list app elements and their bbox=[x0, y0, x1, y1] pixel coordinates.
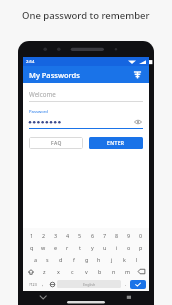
staticText: . bbox=[125, 281, 127, 287]
staticText: g bbox=[85, 256, 89, 263]
staticText: l bbox=[136, 256, 138, 263]
staticText: y bbox=[91, 244, 94, 251]
staticText: 7 bbox=[103, 232, 107, 239]
button[interactable]: n bbox=[108, 267, 119, 276]
button[interactable]: t bbox=[74, 243, 85, 252]
staticText: ?123 bbox=[29, 282, 37, 287]
button[interactable]: d bbox=[55, 255, 66, 264]
button[interactable]: English bbox=[57, 280, 121, 288]
button[interactable]: y bbox=[87, 243, 98, 252]
button[interactable]: i bbox=[111, 243, 122, 252]
button[interactable]: . bbox=[121, 279, 130, 289]
staticText: FAQ bbox=[51, 140, 62, 147]
staticText: ENTER bbox=[107, 140, 125, 147]
staticText: r bbox=[66, 244, 69, 251]
staticText: Password bbox=[29, 109, 48, 115]
button[interactable]: Show password bbox=[132, 116, 143, 127]
staticText: 4 bbox=[66, 232, 70, 239]
staticText: w bbox=[41, 244, 46, 251]
staticText: My Passwords bbox=[29, 70, 80, 80]
button[interactable]: w bbox=[38, 243, 49, 252]
staticText: x bbox=[57, 268, 60, 275]
button[interactable]: b bbox=[94, 267, 105, 276]
button[interactable]: Shift bbox=[25, 267, 36, 276]
staticText: 0 bbox=[139, 232, 143, 239]
button[interactable]: h bbox=[93, 255, 104, 264]
button[interactable]: c bbox=[67, 267, 78, 276]
button[interactable]: r bbox=[62, 243, 73, 252]
button[interactable]: Sort bbox=[131, 68, 144, 81]
staticText: 2:54 bbox=[26, 59, 35, 65]
button[interactable]: Password bbox=[29, 109, 143, 129]
staticText: English bbox=[83, 282, 96, 287]
button[interactable]: q bbox=[26, 243, 37, 252]
staticText: j bbox=[111, 256, 113, 263]
staticText: z bbox=[43, 268, 46, 275]
button[interactable]: m bbox=[122, 267, 133, 276]
staticText: a bbox=[34, 256, 38, 263]
button[interactable]: a bbox=[30, 255, 41, 264]
button[interactable]: o bbox=[123, 243, 134, 252]
staticText: 1 bbox=[30, 232, 34, 239]
staticText: , bbox=[42, 281, 44, 287]
staticText: m bbox=[125, 268, 131, 275]
staticText: b bbox=[98, 268, 102, 275]
staticText: t bbox=[79, 244, 81, 251]
button[interactable]: 0 bbox=[135, 231, 146, 240]
staticText: 9 bbox=[127, 232, 131, 239]
staticText: Welcome bbox=[29, 90, 56, 98]
button[interactable]: Done bbox=[130, 280, 146, 289]
staticText: 3 bbox=[54, 232, 58, 239]
staticText: 6 bbox=[91, 232, 95, 239]
staticText: k bbox=[123, 256, 126, 263]
button[interactable]: Welcome bbox=[29, 90, 143, 102]
button[interactable]: 1 bbox=[26, 231, 37, 240]
staticText: 2 bbox=[42, 232, 46, 239]
button[interactable]: 2 bbox=[38, 231, 49, 240]
staticText: v bbox=[85, 268, 88, 275]
button[interactable]: z bbox=[39, 267, 50, 276]
button[interactable]: e bbox=[50, 243, 61, 252]
button[interactable]: k bbox=[119, 255, 130, 264]
staticText: 5 bbox=[78, 232, 82, 239]
button[interactable]: FAQ bbox=[29, 137, 83, 149]
staticText: 8 bbox=[115, 232, 119, 239]
button[interactable]: 5 bbox=[74, 231, 85, 240]
staticText: c bbox=[71, 268, 74, 275]
button[interactable]: s bbox=[42, 255, 53, 264]
staticText: p bbox=[139, 244, 143, 251]
button[interactable]: 3 bbox=[50, 231, 61, 240]
button[interactable]: f bbox=[68, 255, 79, 264]
staticText: o bbox=[127, 244, 131, 251]
button[interactable]: , bbox=[39, 279, 47, 289]
button[interactable]: ?123 bbox=[26, 279, 39, 289]
button[interactable]: 9 bbox=[123, 231, 134, 240]
button[interactable]: ENTER bbox=[89, 137, 143, 149]
staticText: f bbox=[73, 256, 75, 263]
button[interactable]: 7 bbox=[99, 231, 110, 240]
staticText: One password to remember bbox=[22, 9, 150, 22]
button[interactable]: 8 bbox=[111, 231, 122, 240]
button[interactable]: j bbox=[106, 255, 117, 264]
button[interactable]: g bbox=[81, 255, 92, 264]
staticText: q bbox=[30, 244, 34, 251]
button[interactable]: Backspace bbox=[136, 267, 147, 276]
staticText: i bbox=[116, 244, 118, 251]
staticText: d bbox=[59, 256, 63, 263]
staticText: e bbox=[54, 244, 58, 251]
button[interactable]: l bbox=[131, 255, 142, 264]
button[interactable]: x bbox=[53, 267, 64, 276]
staticText: s bbox=[46, 256, 49, 263]
staticText: h bbox=[97, 256, 101, 263]
button[interactable]: p bbox=[135, 243, 146, 252]
staticText: n bbox=[112, 268, 116, 275]
button[interactable]: 6 bbox=[87, 231, 98, 240]
staticText: u bbox=[103, 244, 107, 251]
button[interactable]: v bbox=[81, 267, 92, 276]
button[interactable]: u bbox=[99, 243, 110, 252]
button[interactable]: Language bbox=[47, 279, 57, 289]
button[interactable]: 4 bbox=[62, 231, 73, 240]
